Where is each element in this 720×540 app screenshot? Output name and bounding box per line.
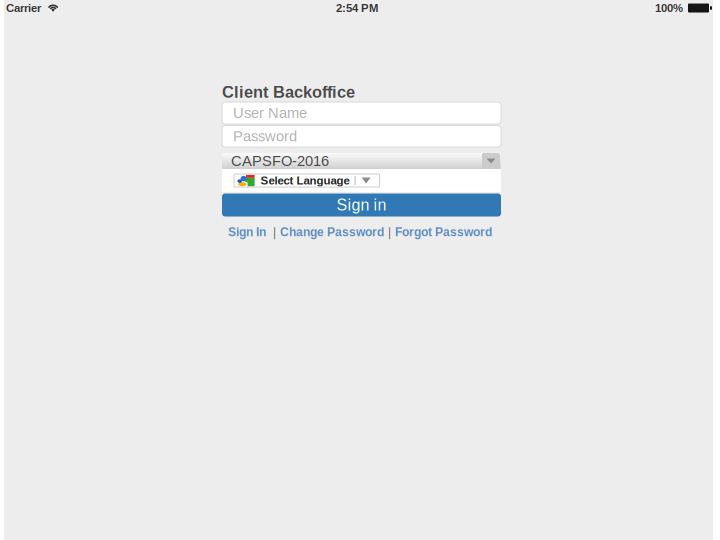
staticText: 100% [655,2,683,14]
staticText: 2:54 PM [336,2,378,14]
staticText: | [388,225,391,239]
staticText: Client Backoffice [222,83,355,101]
button[interactable]: Change Password [280,225,384,239]
staticText: Password [233,128,297,144]
button[interactable]: Select Language [234,174,380,187]
staticText: Forgot Password [395,225,492,239]
staticText: User Name [233,105,307,121]
staticText: | [273,225,276,239]
button[interactable]: CAPSFO-2016 [222,153,501,169]
staticText: Select Language [261,174,350,187]
button[interactable]: Sign In [228,225,266,239]
staticText: Sign In [228,225,266,239]
staticText: Sign in [336,196,386,214]
button[interactable]: Sign in [222,193,501,216]
staticText: Carrier [6,2,41,14]
staticText: Change Password [280,225,384,239]
staticText: CAPSFO-2016 [231,153,329,169]
button[interactable]: Forgot Password [395,225,492,239]
